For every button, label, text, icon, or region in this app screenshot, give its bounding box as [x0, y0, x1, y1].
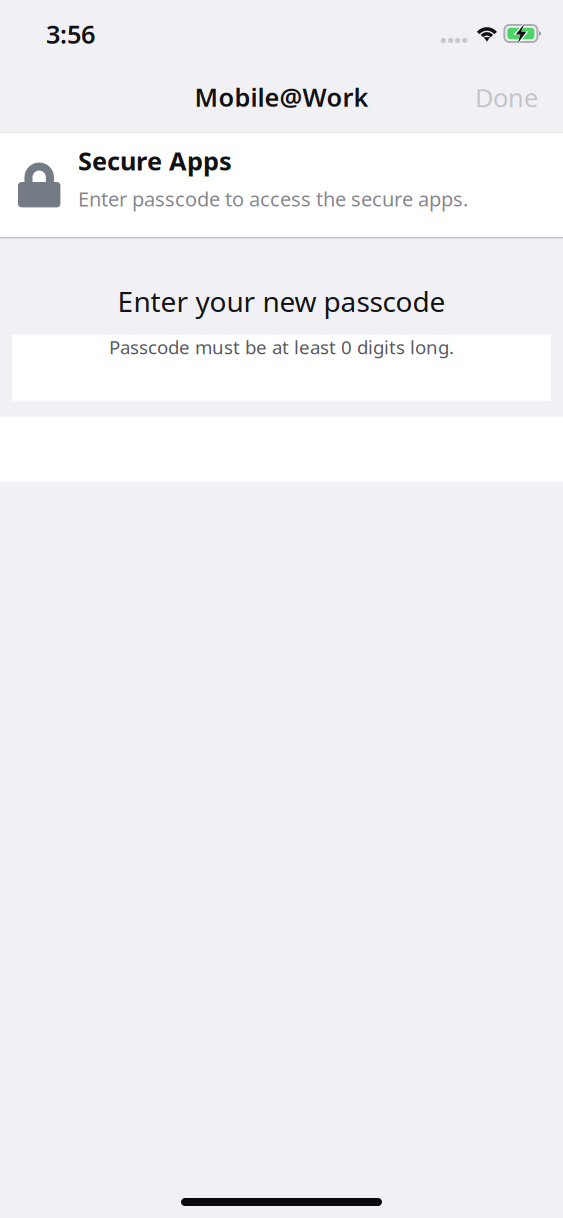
staticText: Mobile@Work: [194, 80, 368, 114]
staticText: Passcode must be at least 0 digits long.: [109, 335, 454, 359]
staticText: Secure Apps: [78, 144, 232, 177]
button[interactable]: Done: [467, 71, 546, 124]
staticText: Enter your new passcode: [117, 282, 445, 320]
staticText: Done: [475, 81, 538, 114]
staticText: 3:56: [46, 17, 95, 51]
staticText: Enter passcode to access the secure apps…: [78, 185, 468, 212]
